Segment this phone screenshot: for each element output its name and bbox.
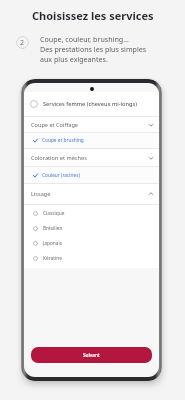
staticText: Classique xyxy=(43,210,65,217)
button[interactable]: Kératine xyxy=(24,251,159,266)
staticText: Lissage xyxy=(31,190,51,198)
staticText: Coupe, couleur, brushing… xyxy=(40,34,129,44)
button[interactable]: Lissage xyxy=(24,184,159,204)
other: Développer xyxy=(148,155,154,161)
staticText: Coupe et brushing xyxy=(42,137,84,144)
staticText: Coloration et mèches xyxy=(31,154,87,162)
staticText: Services femme (cheveux mi-longs) xyxy=(43,100,137,108)
staticText: aux plus exigeantes. xyxy=(40,54,108,64)
staticText: Suivant xyxy=(83,352,100,358)
button[interactable]: Coupe et brushing xyxy=(24,133,159,148)
staticText: Kératine xyxy=(43,255,62,262)
button[interactable]: Suivant xyxy=(31,347,152,363)
staticText: 2 xyxy=(20,38,25,48)
button[interactable]: Classique xyxy=(24,206,159,221)
other: Développer xyxy=(148,122,154,128)
button[interactable]: Coloration et mèches xyxy=(24,149,159,166)
staticText: Couleur (racines) xyxy=(42,172,80,179)
staticText: Brésilien xyxy=(43,225,63,232)
button[interactable]: Couleur (racines) xyxy=(24,167,159,183)
staticText: Japonais xyxy=(43,240,63,247)
button[interactable]: Brésilien xyxy=(24,221,159,236)
staticText: Des prestations les plus simples xyxy=(40,44,147,54)
button[interactable]: Coupe et Coiffage xyxy=(24,117,159,132)
staticText: Coupe et Coiffage xyxy=(31,121,78,129)
other: Réduire xyxy=(148,191,154,197)
button[interactable]: Japonais xyxy=(24,236,159,251)
staticText: Choisissez les services xyxy=(32,8,154,23)
